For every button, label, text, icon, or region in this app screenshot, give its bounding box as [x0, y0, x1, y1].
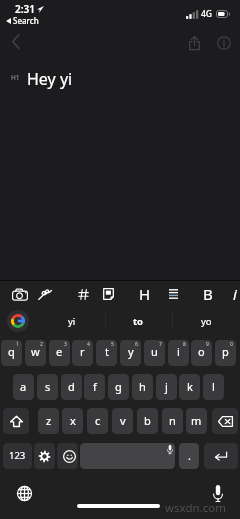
staticText: 6 [135, 341, 138, 348]
staticText: c [95, 413, 101, 428]
button[interactable]: b [137, 408, 158, 434]
staticText: b [144, 413, 151, 428]
staticText: z [46, 413, 52, 428]
button[interactable]: Camera [9, 283, 31, 305]
button[interactable]: c [87, 408, 108, 434]
button[interactable]: List [162, 283, 184, 305]
button[interactable]: s [37, 374, 58, 400]
button[interactable]: Shift [3, 408, 29, 434]
staticText: u [151, 344, 158, 359]
button[interactable]: k [179, 374, 200, 400]
button[interactable]: Tag [72, 283, 94, 305]
staticText: 9 [206, 341, 209, 348]
button[interactable]: v [112, 408, 133, 434]
button[interactable]: g [108, 374, 129, 400]
button[interactable]: Search [6, 15, 39, 26]
button[interactable]: Emoji [57, 443, 78, 469]
button[interactable]: h [132, 374, 153, 400]
button[interactable]: Back [4, 29, 28, 53]
button[interactable]: q [1, 340, 22, 366]
staticText: e [56, 344, 63, 359]
staticText: w [31, 344, 40, 359]
staticText: y [128, 344, 134, 359]
staticText: wsxdn.com [165, 500, 226, 516]
staticText: yi [68, 315, 76, 328]
staticText: 5 [111, 341, 114, 348]
staticText: f [93, 379, 97, 394]
staticText: yo [201, 315, 212, 328]
staticText: 3 [64, 341, 67, 348]
button[interactable]: e [49, 340, 70, 366]
button[interactable]: n [162, 408, 183, 434]
staticText: x [70, 413, 76, 428]
button[interactable]: d [61, 374, 82, 400]
staticText: k [187, 379, 193, 394]
button[interactable]: Markup [34, 283, 56, 305]
button[interactable]: Italic [224, 283, 240, 305]
button[interactable]: Info [212, 31, 235, 54]
staticText: r [80, 344, 85, 359]
staticText: d [68, 379, 75, 394]
staticText: H [139, 284, 151, 304]
staticText: s [45, 379, 51, 394]
button[interactable]: l [203, 374, 224, 400]
staticText: 8 [183, 341, 186, 348]
button[interactable]: Bold [197, 283, 219, 305]
button[interactable]: to [105, 306, 172, 336]
button[interactable]: Google [2, 305, 34, 337]
button[interactable]: Heading [134, 283, 156, 305]
button[interactable]: i [168, 340, 189, 366]
button[interactable]: Backspace [212, 408, 238, 434]
button[interactable]: x [62, 408, 83, 434]
staticText: Hey yi [27, 68, 73, 90]
button[interactable]: z [38, 408, 59, 434]
staticText: i [233, 284, 237, 304]
staticText: m [191, 413, 202, 428]
staticText: p [222, 344, 229, 359]
button[interactable]: r [72, 340, 93, 366]
button[interactable]: yi [38, 306, 105, 336]
staticText: 4G [201, 8, 213, 20]
button[interactable]: a [13, 374, 34, 400]
staticText: 1 [16, 341, 19, 348]
staticText: Search [13, 15, 39, 26]
staticText: to [133, 315, 144, 328]
staticText: n [169, 413, 176, 428]
staticText: 2 [40, 341, 43, 348]
button[interactable]: o [191, 340, 212, 366]
staticText: g [115, 379, 122, 394]
button[interactable]: p [215, 340, 236, 366]
button[interactable]: Sticker [97, 283, 119, 305]
button[interactable]: Settings [34, 443, 55, 469]
staticText: 0 [230, 341, 233, 348]
button[interactable]: yo [172, 306, 240, 336]
staticText: a [20, 379, 27, 394]
staticText: t [105, 344, 109, 359]
button[interactable]: w [25, 340, 46, 366]
button[interactable]: u [144, 340, 165, 366]
button[interactable]: Enter [204, 443, 238, 469]
staticText: 7 [159, 341, 162, 348]
staticText: o [198, 344, 205, 359]
button[interactable]: 123 [3, 443, 32, 469]
staticText: B [203, 284, 213, 304]
button[interactable]: f [84, 374, 105, 400]
staticText: 123 [9, 449, 26, 462]
staticText: i [177, 344, 180, 359]
button[interactable]: Voice input [206, 481, 230, 505]
button[interactable]: y [120, 340, 141, 366]
staticText: 4 [87, 341, 90, 348]
button[interactable]: Language [12, 481, 36, 505]
staticText: 2:31 [15, 2, 35, 16]
button[interactable]: t [96, 340, 117, 366]
staticText: H1 [11, 73, 20, 82]
staticText: q [8, 344, 15, 359]
staticText: l [212, 379, 215, 394]
button[interactable]: m [186, 408, 207, 434]
staticText: h [139, 379, 146, 394]
button[interactable]: j [156, 374, 177, 400]
button[interactable]: Space [80, 443, 175, 469]
staticText: j [165, 379, 168, 394]
button[interactable]: Share [183, 31, 206, 54]
button[interactable]: . [179, 443, 199, 469]
